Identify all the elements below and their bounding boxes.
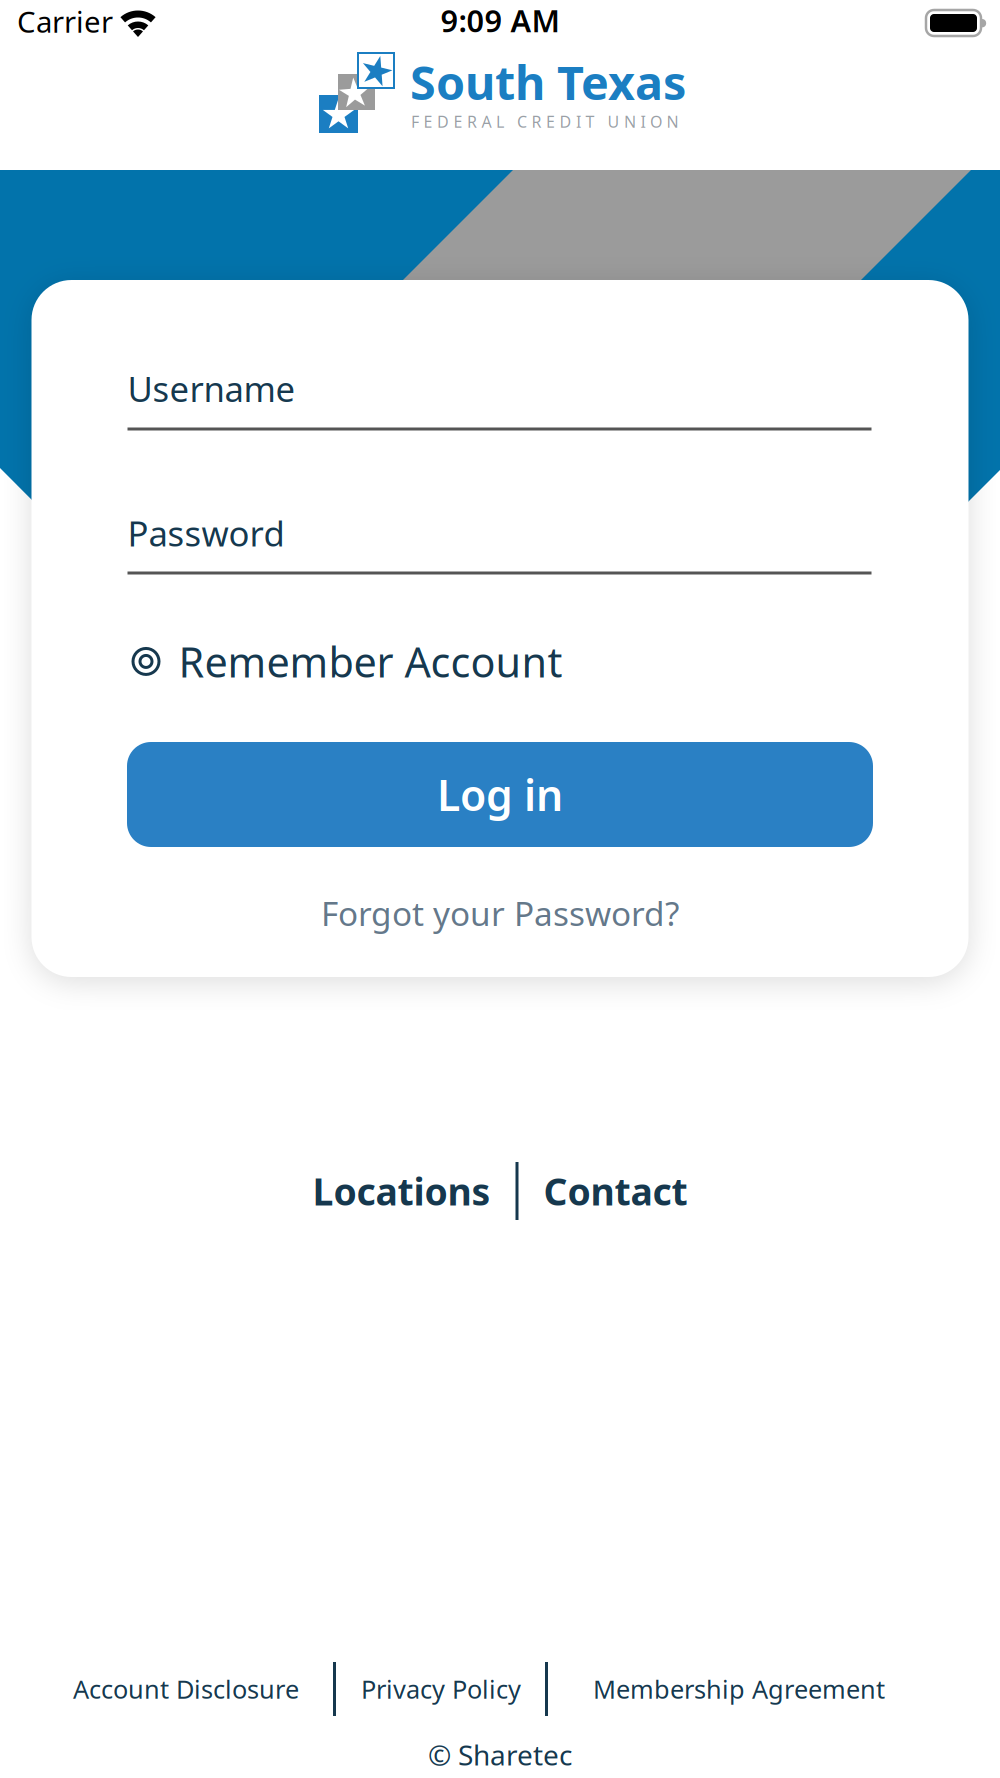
staticText: Membership Agreement (593, 1672, 885, 1706)
staticText: Locations (312, 1166, 490, 1216)
button[interactable]: Contact (543, 1166, 687, 1216)
button[interactable]: Remember Account (131, 634, 562, 689)
staticText: 9:09 AM (440, 0, 559, 41)
button[interactable]: Username (127, 365, 871, 426)
button[interactable]: Password (127, 510, 871, 571)
button[interactable]: Log in (127, 742, 873, 847)
staticText: Username (127, 365, 295, 411)
staticText: FEDERAL CREDIT UNION (411, 111, 678, 132)
button[interactable]: Locations (312, 1166, 490, 1216)
button[interactable]: Forgot your Password? (321, 891, 679, 935)
staticText: Log in (437, 766, 563, 823)
button[interactable]: Membership Agreement (593, 1672, 885, 1706)
staticText: Account Disclosure (73, 1672, 299, 1706)
staticText: Remember Account (178, 634, 562, 689)
staticText: South Texas (410, 51, 686, 113)
staticText: Carrier (17, 2, 113, 41)
button[interactable]: Privacy Policy (361, 1672, 521, 1706)
staticText: © Sharetec (428, 1736, 572, 1773)
staticText: Forgot your Password? (321, 891, 679, 935)
button[interactable]: Account Disclosure (73, 1672, 299, 1706)
staticText: Password (127, 510, 284, 556)
staticText: Contact (543, 1166, 687, 1216)
staticText: Privacy Policy (361, 1672, 521, 1706)
